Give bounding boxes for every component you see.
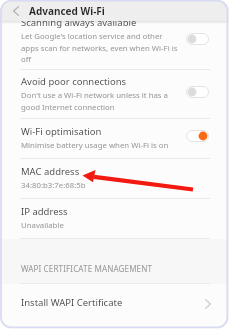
staticText: Advanced Wi-Fi (29, 4, 105, 18)
staticText: WAPI CERTIFICATE MANAGEMENT (21, 263, 153, 274)
staticText: 34:80:b3:7e:68:5b (21, 180, 86, 191)
staticText: Let Google's location service and other … (21, 31, 178, 64)
button[interactable]: Avoid poor connections (0, 70, 229, 119)
staticText: Avoid poor connections (21, 75, 127, 88)
button[interactable]: Switch off (186, 86, 209, 98)
staticText: MAC address (21, 165, 80, 178)
button[interactable]: MAC address (0, 159, 229, 199)
staticText: Unavailable (21, 220, 64, 231)
button[interactable]: Switch off (186, 33, 209, 45)
staticText: IP address (21, 205, 68, 218)
button[interactable]: Scanning always available (0, 21, 229, 70)
staticText: Minimise battery usage when Wi-Fi is on (21, 140, 169, 151)
button[interactable]: Back (11, 0, 21, 21)
button[interactable]: IP address (0, 199, 229, 239)
button[interactable]: Wi-Fi optimisation (0, 119, 229, 159)
staticText: Install WAPI Certificate (21, 296, 205, 309)
staticText: Wi-Fi optimisation (21, 125, 102, 138)
button[interactable]: Switch on (186, 130, 209, 142)
button[interactable]: Install WAPI Certificate (0, 284, 229, 329)
staticText: Don't use a Wi-Fi network unless it has … (21, 90, 168, 112)
staticText: Scanning always available (21, 16, 137, 29)
